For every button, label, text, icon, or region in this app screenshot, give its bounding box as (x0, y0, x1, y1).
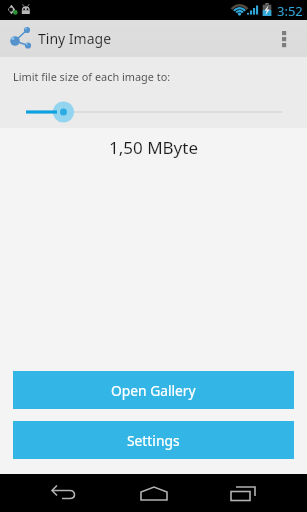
staticText: 1,50 MByte (0, 136, 307, 159)
staticText: 3:52 (277, 2, 303, 20)
button[interactable]: Open Gallery (13, 371, 294, 409)
button[interactable]: More options (266, 20, 303, 57)
staticText: Settings (127, 431, 180, 450)
staticText: Limit file size of each image to: (13, 69, 171, 84)
button[interactable]: Back (23, 474, 104, 512)
button[interactable]: Settings (13, 421, 294, 459)
button[interactable]: Recent apps (203, 474, 284, 512)
staticText: Open Gallery (111, 381, 196, 400)
staticText: Tiny Image (38, 29, 112, 48)
button[interactable]: Home (113, 474, 194, 512)
